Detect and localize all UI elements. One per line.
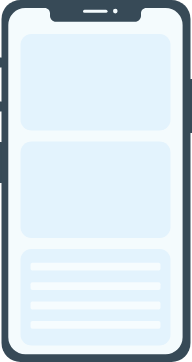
button[interactable]: Phone mockup: [0, 0, 192, 362]
